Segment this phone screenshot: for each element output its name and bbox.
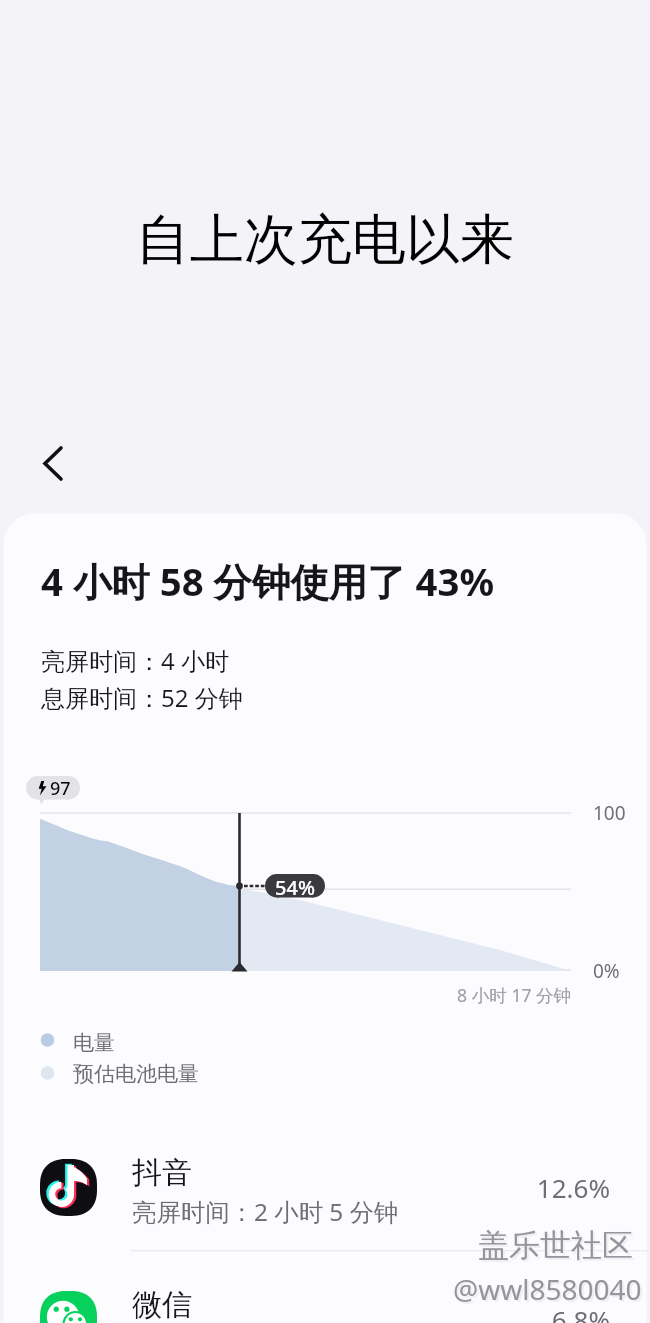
button[interactable]: 抖音 — [0, 1119, 650, 1251]
staticText: 电量 — [73, 1030, 115, 1056]
staticText: 12.6% — [420, 1170, 610, 1204]
staticText: 6.8% — [420, 1302, 610, 1323]
staticText: 54% — [275, 874, 315, 901]
staticText: 4 小时 58 分钟使用了 43% — [41, 555, 495, 607]
staticText: 预估电池电量 — [73, 1061, 199, 1087]
button[interactable]: Back — [25, 432, 85, 492]
staticText: 抖音 — [132, 1154, 192, 1192]
staticText: 息屏时间：52 分钟 — [41, 681, 243, 714]
staticText: @wwl8580040 — [453, 1270, 642, 1308]
staticText: 8 小时 17 分钟 — [457, 983, 572, 1007]
staticText: 亮屏时间：4 小时 — [41, 644, 229, 677]
staticText: 亮屏时间：2 小时 5 分钟 — [132, 1195, 399, 1228]
staticText: 微信 — [132, 1286, 192, 1323]
staticText: 盖乐世社区 — [480, 1228, 635, 1267]
staticText: 0% — [593, 958, 620, 984]
staticText: 自上次充电以来 — [0, 206, 650, 274]
staticText: @wwl8580040 — [455, 1272, 644, 1310]
staticText: 97 — [50, 776, 71, 801]
button[interactable]: 微信 — [0, 1251, 650, 1323]
staticText: 盖乐世社区 — [478, 1226, 633, 1265]
staticText: 100 — [593, 800, 626, 826]
